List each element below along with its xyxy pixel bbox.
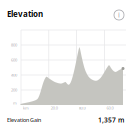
staticText: 60.0 [106, 105, 113, 111]
staticText: 200 [11, 87, 17, 93]
staticText: km [23, 105, 29, 111]
staticText: m [13, 100, 17, 106]
button[interactable]: Info [111, 7, 127, 23]
staticText: 400 [11, 72, 17, 78]
staticText: 20.0 [51, 105, 58, 111]
staticText: 1,357 m [98, 116, 124, 124]
staticText: 800 [11, 42, 17, 48]
staticText: Elevation [7, 9, 43, 19]
staticText: Elevation Gain [7, 116, 41, 124]
staticText: 600 [11, 57, 17, 63]
staticText: i [118, 11, 120, 19]
staticText: 40.0 [79, 105, 86, 111]
